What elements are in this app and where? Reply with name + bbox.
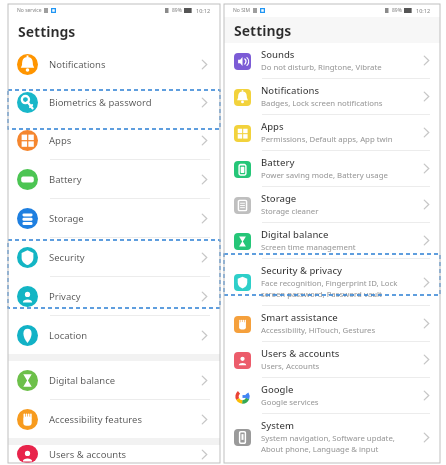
- button[interactable]: Privacy: [8, 277, 220, 315]
- staticText: Storage: [261, 192, 297, 205]
- staticText: Power saving mode, Battery usage: [261, 170, 388, 181]
- staticText: Digital balance: [49, 374, 116, 387]
- staticText: No service: [17, 7, 42, 14]
- staticText: Settings: [18, 22, 76, 41]
- button[interactable]: Digital balance: [8, 361, 220, 399]
- staticText: Face recognition, Fingerprint ID, Lock: [261, 278, 398, 289]
- staticText: Battery: [261, 156, 295, 169]
- button[interactable]: Users & accounts: [224, 342, 440, 377]
- staticText: Google services: [261, 397, 319, 408]
- staticText: Security & privacy: [261, 264, 343, 277]
- staticText: Sounds: [261, 48, 295, 61]
- staticText: Permissions, Default apps, App twin: [261, 134, 393, 145]
- staticText: System navigation, Software update,: [261, 433, 395, 444]
- staticText: Digital balance: [261, 228, 329, 241]
- staticText: No SIM: [233, 7, 251, 14]
- button[interactable]: Users & accounts: [8, 445, 220, 463]
- staticText: Storage: [49, 212, 84, 225]
- staticText: Notifications: [261, 84, 320, 97]
- staticText: Accessibility features: [49, 413, 142, 426]
- staticText: Do not disturb, Ringtone, Vibrate: [261, 62, 382, 73]
- staticText: Privacy: [49, 290, 81, 303]
- button[interactable]: Apps: [224, 115, 440, 150]
- button[interactable]: Battery: [8, 160, 220, 198]
- button[interactable]: Security & privacy: [224, 259, 440, 305]
- button[interactable]: Notifications: [8, 45, 220, 83]
- button[interactable]: Apps: [8, 121, 220, 159]
- staticText: Location: [49, 329, 88, 342]
- button[interactable]: System: [224, 414, 440, 460]
- button[interactable]: Security: [8, 238, 220, 276]
- button[interactable]: Google: [224, 378, 440, 413]
- staticText: Storage cleaner: [261, 206, 319, 217]
- button[interactable]: Digital balance: [224, 223, 440, 258]
- button[interactable]: Smart assistance: [224, 306, 440, 341]
- staticText: Notifications: [49, 58, 106, 71]
- button[interactable]: Biometrics & password: [8, 83, 220, 121]
- staticText: 89%: [392, 7, 402, 14]
- staticText: Screen time management: [261, 242, 356, 253]
- button[interactable]: Notifications: [224, 79, 440, 114]
- staticText: Users, Accounts: [261, 361, 320, 372]
- staticText: Apps: [261, 120, 284, 133]
- button[interactable]: Sounds: [224, 43, 440, 78]
- staticText: 89%: [172, 7, 182, 14]
- staticText: Smart assistance: [261, 311, 338, 324]
- staticText: Apps: [49, 134, 72, 147]
- staticText: Google: [261, 383, 294, 396]
- staticText: 10:12: [196, 7, 211, 14]
- button[interactable]: Storage: [224, 187, 440, 222]
- staticText: Accessibility, HiTouch, Gestures: [261, 325, 376, 336]
- staticText: Users & accounts: [261, 347, 340, 360]
- button[interactable]: Accessibility features: [8, 400, 220, 438]
- staticText: Security: [49, 251, 85, 264]
- button[interactable]: Location: [8, 316, 220, 354]
- staticText: Battery: [49, 173, 82, 186]
- button[interactable]: Storage: [8, 199, 220, 237]
- staticText: screen password, Password vault: [261, 289, 382, 300]
- staticText: Users & accounts: [49, 448, 127, 461]
- staticText: Settings: [234, 21, 292, 40]
- staticText: System: [261, 419, 294, 432]
- button[interactable]: Battery: [224, 151, 440, 186]
- staticText: Badges, Lock screen notifications: [261, 98, 383, 109]
- staticText: About phone, Language & input: [261, 444, 379, 455]
- staticText: 10:12: [416, 7, 431, 14]
- staticText: Biometrics & password: [49, 96, 152, 109]
